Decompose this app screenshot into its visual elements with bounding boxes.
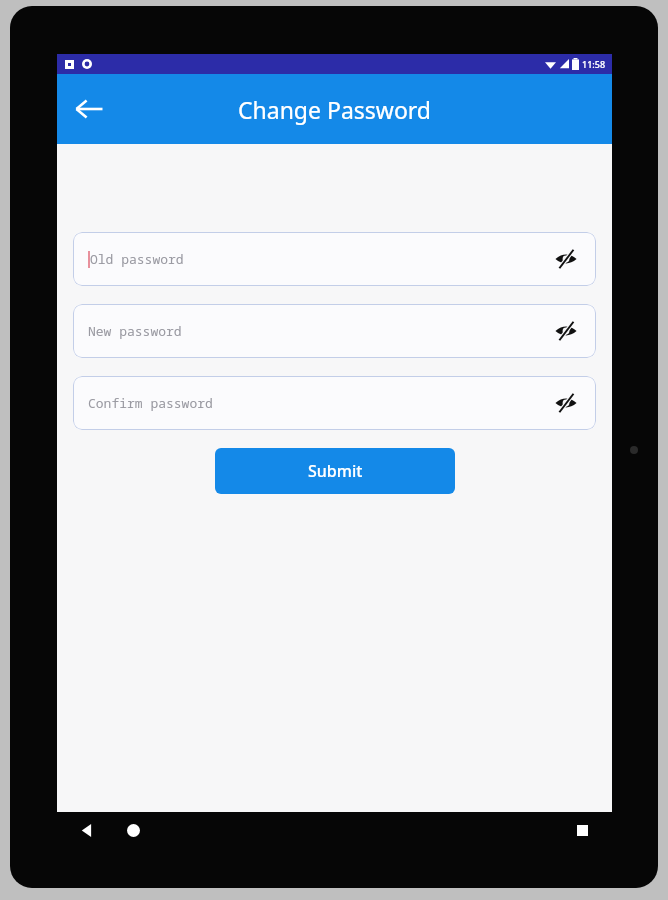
- button[interactable]: Show password: [548, 241, 584, 277]
- staticText: Old password: [90, 250, 184, 268]
- staticText: Change Password: [238, 94, 431, 125]
- staticText: Confirm password: [88, 394, 213, 412]
- staticText: New password: [88, 322, 182, 340]
- button[interactable]: Old password: [73, 232, 596, 286]
- staticText: Submit: [308, 460, 363, 482]
- button[interactable]: Home: [117, 814, 149, 846]
- button[interactable]: New password: [73, 304, 596, 358]
- staticText: 11:58: [582, 58, 606, 70]
- button[interactable]: Show password: [548, 313, 584, 349]
- button[interactable]: Back: [65, 85, 113, 133]
- button[interactable]: Back: [71, 814, 103, 846]
- button[interactable]: Confirm password: [73, 376, 596, 430]
- button[interactable]: Recent apps: [566, 814, 598, 846]
- button[interactable]: Show password: [548, 385, 584, 421]
- button[interactable]: Submit: [215, 448, 455, 494]
